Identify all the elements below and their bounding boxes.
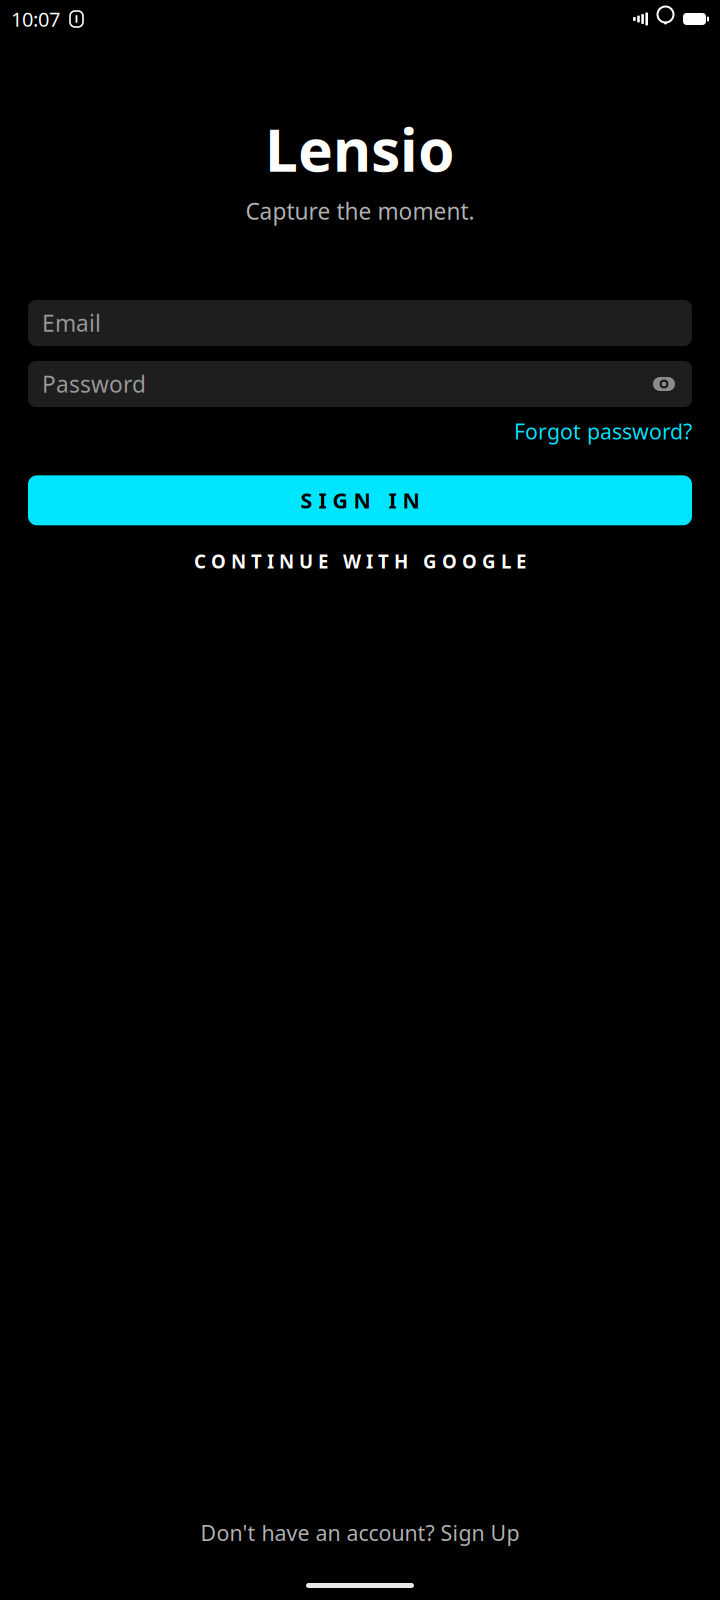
button[interactable]: Forgot password? [514,417,692,445]
staticText: Capture the moment. [245,196,474,226]
button[interactable]: Email [28,300,692,346]
staticText: 10:07 [11,6,60,32]
button[interactable]: Show password [650,372,678,396]
staticText: Don't have an account? Sign Up [200,1519,519,1547]
staticText: C O N T I N U E W I T H G O O G L E [194,549,526,574]
button[interactable]: C O N T I N U E W I T H G O O G L E [28,538,692,584]
button[interactable]: Password [28,361,692,407]
button[interactable]: S I G N I N [28,475,692,525]
staticText: S I G N I N [300,486,419,514]
staticText: Email [42,308,101,338]
staticText: Password [42,369,146,399]
button[interactable]: Don't have an account? Sign Up [180,1511,539,1555]
staticText: Forgot password? [514,417,692,445]
staticText: Lensio [265,110,455,188]
